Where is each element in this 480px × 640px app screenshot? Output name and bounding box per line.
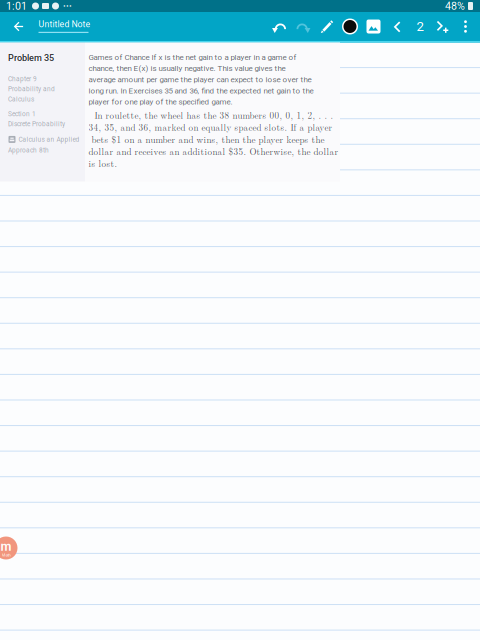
button[interactable]: Previous page (385, 12, 409, 41)
staticText: 48% (445, 0, 465, 12)
staticText: ••• (63, 1, 72, 11)
staticText: Calculus (8, 95, 34, 103)
staticText: Section 1 (8, 110, 36, 118)
button[interactable]: Redo (292, 12, 315, 41)
staticText: Untitled Note (38, 19, 90, 29)
staticText: m (0, 539, 11, 554)
staticText: Games of Chance If x is the net gain to … (88, 52, 313, 107)
staticText: Discrete Probability (8, 120, 65, 128)
button[interactable]: Next page (431, 12, 454, 41)
staticText: Probability and (8, 85, 55, 93)
button[interactable]: More options (454, 12, 477, 41)
button[interactable]: Pen (315, 12, 338, 41)
staticText: 2 (416, 19, 423, 34)
staticText: Problem 35 (8, 52, 54, 63)
button[interactable]: Undo (268, 12, 292, 41)
staticText: Calculus an Applied (18, 136, 79, 143)
staticText: In roulette, the wheel has the 38 number… (88, 109, 338, 170)
button[interactable]: 2 (409, 12, 431, 41)
staticText: Math (1, 552, 10, 557)
staticText: 1:01 (6, 0, 27, 12)
staticText: Chapter 9 (8, 75, 37, 83)
button[interactable]: Ink colour (338, 12, 362, 41)
staticText: Approach 8th (8, 146, 49, 154)
button[interactable]: Untitled Note (38, 12, 90, 41)
button[interactable]: Back (5, 12, 31, 41)
button[interactable]: Insert image (362, 12, 385, 41)
